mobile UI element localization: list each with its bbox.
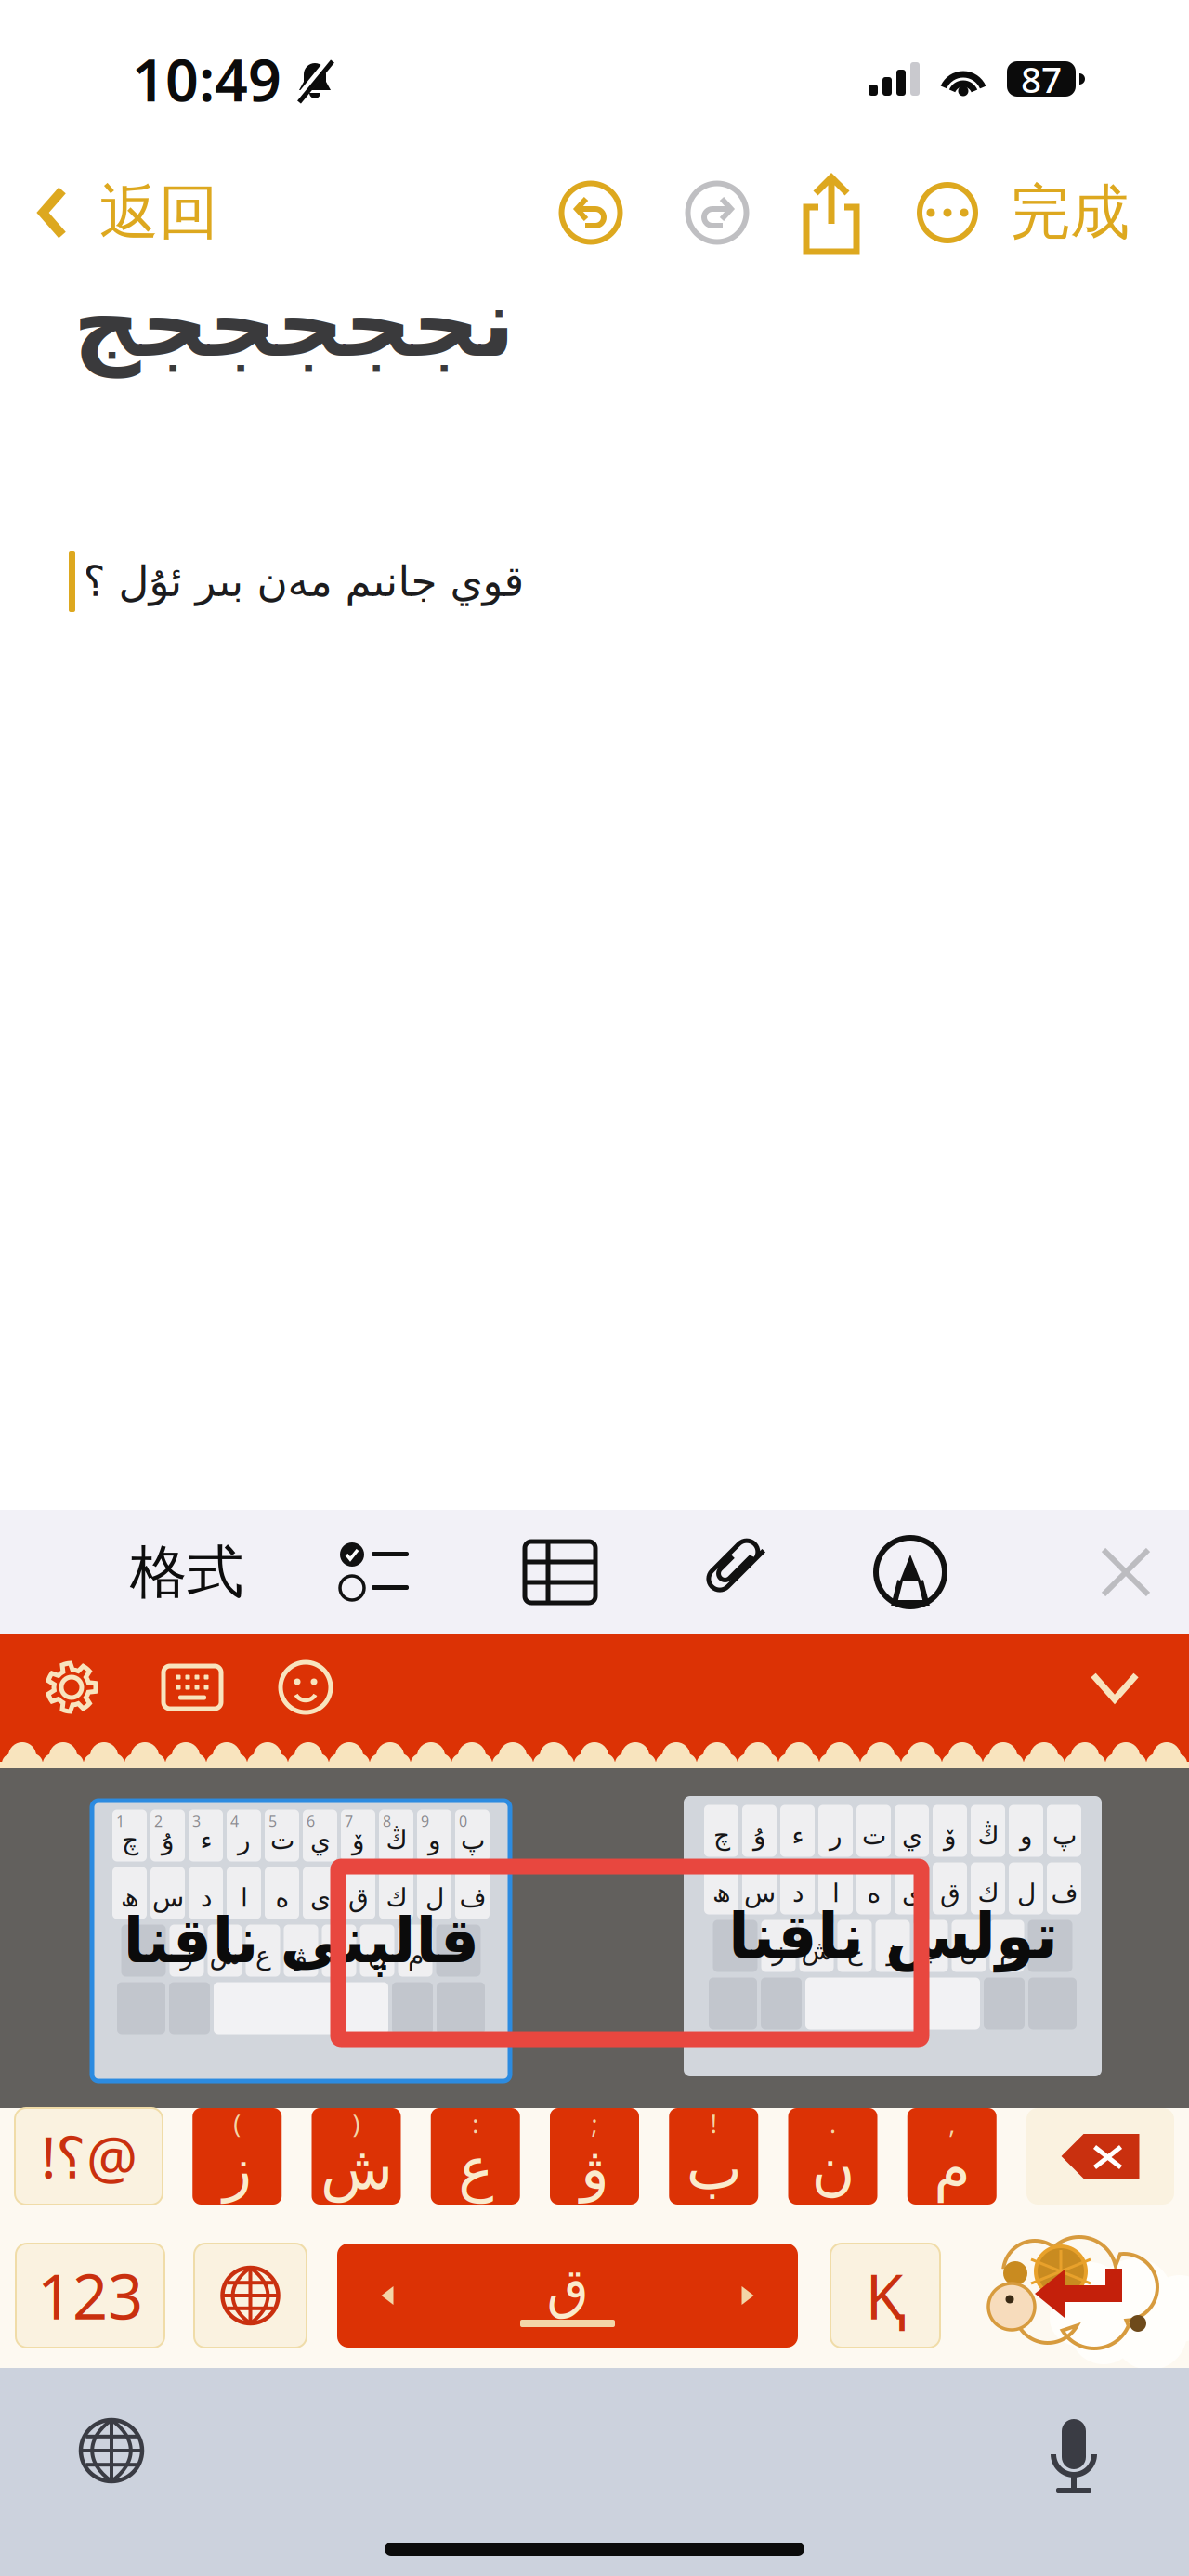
button[interactable]: 格式 [122,1510,252,1634]
button[interactable]: Keyboard layout [162,1663,223,1711]
staticText: ق [348,1883,368,1912]
button[interactable]: Keyboard settings [45,1660,98,1714]
staticText: ع [458,2135,493,2202]
button[interactable]: Hide toolbar [1089,1669,1141,1706]
staticText: پ [460,1825,484,1855]
button[interactable]: : [431,2108,520,2205]
staticText: 3 [192,1811,201,1831]
staticText: ۇ [753,1821,766,1850]
staticText: و [428,1825,441,1855]
staticText: چ [121,1825,138,1855]
staticText: 8 [383,1811,391,1831]
button[interactable]: Dictate [1018,2395,1130,2506]
staticText: ر [829,1821,842,1850]
staticText: ۆ [352,1825,365,1855]
staticText: ن [367,1940,387,1970]
staticText: ە [867,1878,881,1908]
staticText: پ [1052,1821,1076,1850]
staticText: 123 [37,2254,143,2337]
staticText: 5 [268,1811,277,1831]
staticText: ل [1017,1878,1035,1908]
staticText: ب [327,1940,351,1970]
button[interactable]: 123 [16,2244,164,2348]
button[interactable]: Undo [557,179,624,246]
staticText: 返回 [99,176,218,249]
button[interactable]: 完成 [1011,162,1189,264]
staticText: : [472,2107,479,2140]
staticText: ي [902,1821,922,1850]
staticText: ف [1051,1878,1078,1908]
staticText: Ⱪ [865,2254,905,2337]
staticText: ز [223,2135,252,2202]
staticText: ق [940,1878,960,1908]
button[interactable]: Redo [684,179,751,246]
button[interactable]: Markup [859,1510,961,1634]
staticText: ك [385,1883,407,1912]
staticText: ( [233,2107,241,2140]
button[interactable]: Delete [1026,2108,1174,2205]
staticText: ۋ [886,1936,899,1965]
staticText: 9 [421,1811,429,1831]
staticText: 2 [154,1811,163,1831]
button[interactable]: Globe [56,2395,167,2506]
staticText: ش [320,2135,392,2202]
staticText: د [792,1878,803,1908]
button[interactable]: ! [669,2108,758,2205]
staticText: ي [310,1825,330,1855]
button[interactable]: Close toolbar [1075,1510,1177,1634]
staticText: 0 [459,1811,467,1831]
staticText: نجججججج [72,270,515,377]
staticText: ھ [712,1878,731,1908]
staticText: ت [270,1825,294,1855]
staticText: ع [847,1936,862,1965]
staticText: ر [237,1825,250,1855]
button[interactable]: ( [192,2108,282,2205]
staticText: تولس ناقنا [728,1901,1058,1971]
staticText: 完成 [1011,176,1130,249]
button[interactable]: Ⱪ [830,2244,940,2348]
staticText: س [744,1878,775,1908]
button[interactable]: Share [801,168,862,257]
staticText: ۇ [161,1825,174,1855]
button[interactable]: Next keyboard [194,2244,307,2348]
staticText: قوي جانىم مەن بىر ئۇل ؟ [83,557,524,605]
staticText: ۋ [294,1940,307,1970]
staticText: قالپنى ناقنا [123,1906,479,1976]
staticText: ! [710,2107,717,2140]
button[interactable]: ; [550,2108,639,2205]
staticText: 7 [345,1811,353,1831]
staticText: 6 [307,1811,315,1831]
staticText: 87 [1021,55,1062,103]
button[interactable]: 返回 [0,162,231,264]
staticText: ل [425,1883,444,1912]
staticText: ڭ [977,1821,999,1850]
staticText: ع [255,1940,271,1970]
button[interactable]: ق [337,2244,798,2348]
button[interactable]: @؟! [15,2108,163,2205]
staticText: ب [686,2135,741,2202]
button[interactable]: More [914,179,981,246]
button[interactable]: Table [509,1510,611,1634]
staticText: ز [772,1936,785,1965]
button[interactable]: ) [312,2108,401,2205]
staticText: ھ [120,1883,139,1912]
staticText: و [1019,1821,1032,1850]
staticText: ف [459,1883,486,1912]
button[interactable]: Attach file [686,1510,788,1634]
staticText: ە [275,1883,289,1912]
button[interactable]: , [907,2108,997,2205]
staticText: ك [977,1878,999,1908]
staticText: م [933,2135,971,2202]
staticText: ۋ [580,2135,609,2202]
button[interactable]: . [788,2108,877,2205]
staticText: ن [811,2135,855,2202]
button[interactable]: Checklist [324,1510,426,1634]
staticText: ى [902,1878,922,1908]
button[interactable]: Return [975,2237,1161,2354]
staticText: ڭ [385,1825,407,1855]
button[interactable]: Emoji [281,1662,331,1712]
staticText: ش [209,1940,241,1970]
staticText: ن [959,1936,979,1965]
staticText: 4 [230,1811,239,1831]
staticText: , [949,2107,955,2140]
